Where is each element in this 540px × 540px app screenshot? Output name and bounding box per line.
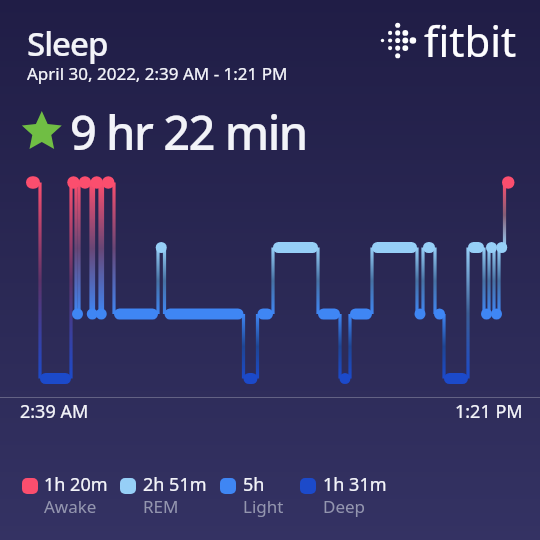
staticText: REM	[143, 495, 179, 518]
staticText: Sleep	[27, 21, 108, 66]
staticText: Deep	[323, 495, 366, 518]
staticText: 5h	[243, 472, 265, 497]
staticText: Light	[243, 495, 284, 518]
staticText: 9 hr 22 min	[70, 100, 307, 164]
staticText: fitbit	[424, 12, 517, 69]
staticText: 1h 31m	[323, 472, 387, 497]
staticText: 1:21 PM	[455, 399, 523, 424]
staticText: 2:39 AM	[20, 399, 89, 424]
staticText: April 30, 2022, 2:39 AM - 1:21 PM	[27, 62, 288, 85]
staticText: Awake	[44, 495, 97, 518]
staticText: 1h 20m	[44, 472, 108, 497]
staticText: 2h 51m	[143, 472, 207, 497]
